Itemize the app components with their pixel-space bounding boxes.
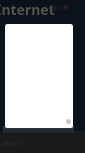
- button[interactable]: Tabs: [50, 3, 58, 12]
- button[interactable]: [5, 24, 73, 128]
- button[interactable]: More options: [57, 3, 62, 12]
- staticText: Internet: [0, 0, 55, 19]
- other: Page loading: [66, 119, 71, 124]
- button[interactable]: ABOUT US: [2, 141, 28, 148]
- button[interactable]: Profile: [61, 3, 69, 12]
